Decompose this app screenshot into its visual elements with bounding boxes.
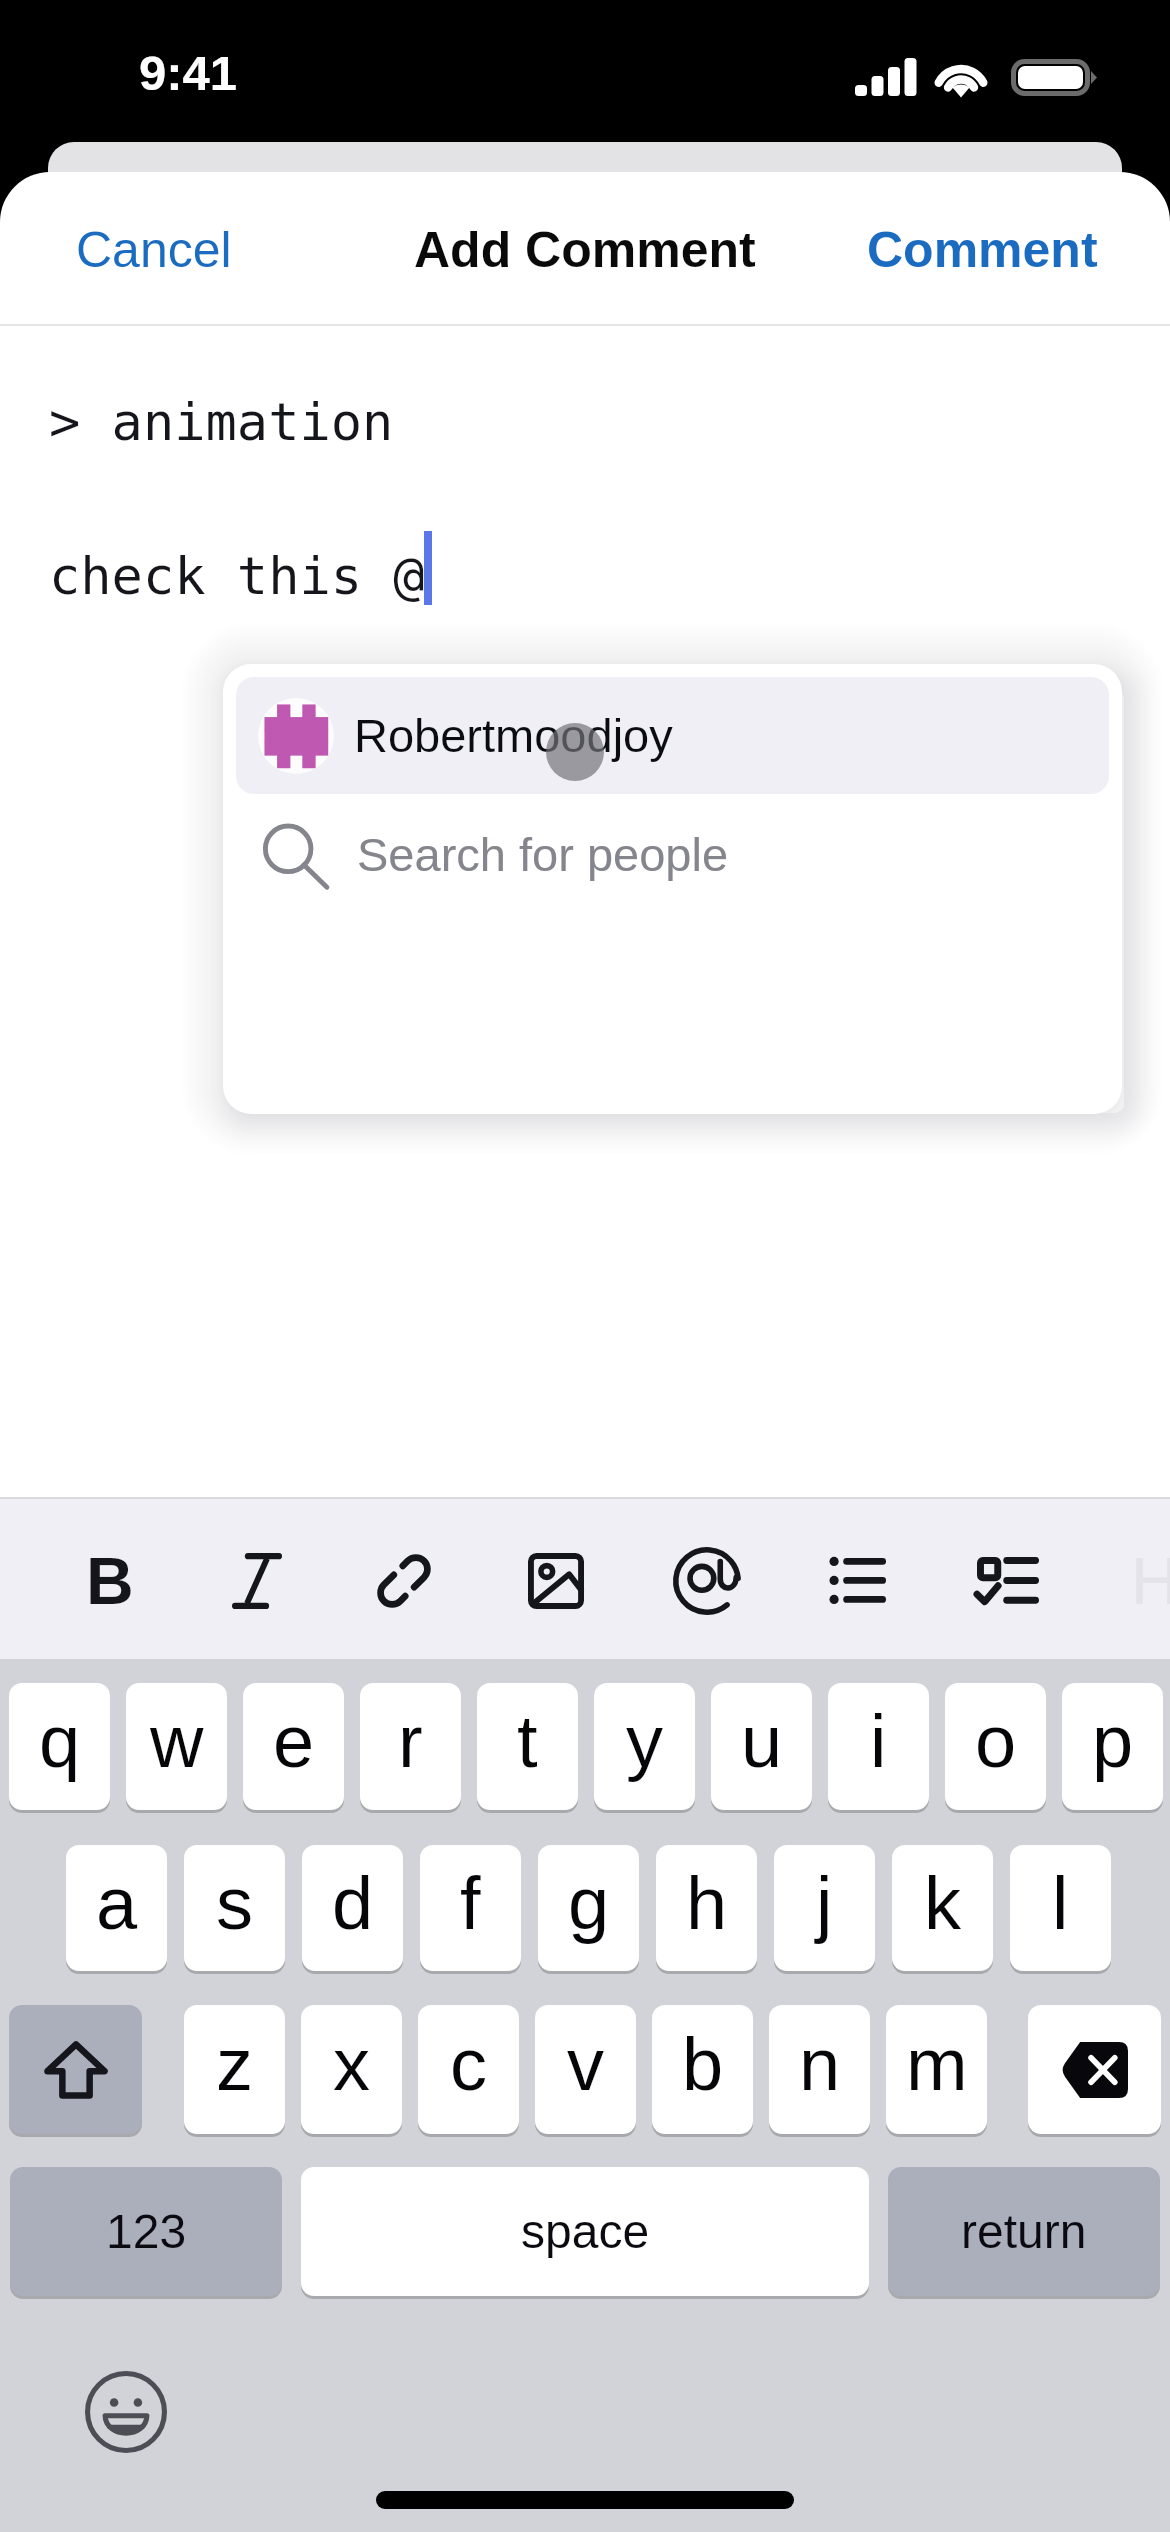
button[interactable]: v xyxy=(535,2005,636,2134)
button[interactable]: o xyxy=(945,1683,1046,1810)
button[interactable]: f xyxy=(420,1845,521,1971)
staticText: a xyxy=(96,1862,138,1945)
staticText: s xyxy=(216,1862,253,1945)
button[interactable]: Italic xyxy=(201,1525,313,1637)
staticText: f xyxy=(460,1862,481,1945)
staticText: return xyxy=(961,2205,1087,2259)
button[interactable]: Comment xyxy=(827,196,1138,304)
staticText: check this @ xyxy=(49,546,425,607)
button[interactable]: j xyxy=(774,1845,875,1971)
button[interactable]: g xyxy=(538,1845,639,1971)
button[interactable]: e xyxy=(243,1683,344,1810)
button[interactable]: 123 xyxy=(10,2167,282,2296)
button[interactable]: Image xyxy=(500,1525,612,1637)
staticText: p xyxy=(1092,1700,1134,1783)
button[interactable]: t xyxy=(477,1683,578,1810)
staticText: Robertmoodjoy xyxy=(354,709,673,762)
button[interactable]: z xyxy=(184,2005,285,2134)
staticText: y xyxy=(626,1700,663,1783)
staticText: h xyxy=(686,1862,728,1945)
button[interactable]: s xyxy=(184,1845,285,1971)
staticText: j xyxy=(816,1862,833,1945)
staticText: Add Comment xyxy=(414,222,756,278)
staticText: q xyxy=(39,1700,81,1783)
button[interactable]: a xyxy=(66,1845,167,1971)
staticText: o xyxy=(975,1700,1017,1783)
staticText: m xyxy=(906,2023,968,2106)
button[interactable]: Shift xyxy=(9,2005,142,2134)
staticText: i xyxy=(870,1700,887,1783)
button[interactable]: Bullet list xyxy=(801,1525,913,1637)
button[interactable]: r xyxy=(360,1683,461,1810)
staticText: b xyxy=(682,2023,724,2106)
staticText: Search for people xyxy=(357,828,729,881)
staticText: d xyxy=(332,1862,374,1945)
button[interactable]: x xyxy=(301,2005,402,2134)
staticText: Cancel xyxy=(76,222,232,278)
staticText: H xyxy=(1131,1544,1170,1618)
button[interactable]: n xyxy=(769,2005,870,2134)
staticText: 123 xyxy=(106,2205,187,2259)
staticText: n xyxy=(799,2023,841,2106)
staticText: w xyxy=(150,1700,204,1783)
button[interactable]: q xyxy=(9,1683,110,1810)
button[interactable]: Robertmoodjoy xyxy=(236,677,1109,794)
button[interactable]: d xyxy=(302,1845,403,1971)
button[interactable]: Checklist xyxy=(952,1525,1064,1637)
button[interactable]: Search for people xyxy=(236,794,1109,914)
button[interactable]: h xyxy=(656,1845,757,1971)
staticText: g xyxy=(568,1862,610,1945)
button[interactable]: Backspace xyxy=(1028,2005,1161,2134)
staticText: z xyxy=(216,2023,253,2106)
staticText: k xyxy=(924,1862,961,1945)
button[interactable]: Mention xyxy=(651,1525,763,1637)
button[interactable]: w xyxy=(126,1683,227,1810)
button[interactable]: m xyxy=(886,2005,987,2134)
button[interactable]: space xyxy=(301,2167,869,2296)
staticText: x xyxy=(333,2023,370,2106)
staticText: > animation xyxy=(49,392,394,453)
staticText: t xyxy=(517,1700,538,1783)
button[interactable]: i xyxy=(828,1683,929,1810)
button[interactable]: Cancel xyxy=(36,196,272,304)
staticText: r xyxy=(398,1700,423,1783)
button[interactable]: p xyxy=(1062,1683,1163,1810)
button[interactable]: return xyxy=(888,2167,1160,2296)
button[interactable]: b xyxy=(652,2005,753,2134)
button[interactable]: Link xyxy=(348,1525,460,1637)
staticText: Comment xyxy=(867,222,1098,278)
button[interactable]: y xyxy=(594,1683,695,1810)
staticText: u xyxy=(741,1700,783,1783)
button[interactable]: l xyxy=(1010,1845,1111,1971)
button[interactable]: Bold xyxy=(54,1525,166,1637)
staticText: l xyxy=(1052,1862,1069,1945)
staticText: e xyxy=(273,1700,315,1783)
staticText: v xyxy=(567,2023,604,2106)
button[interactable]: k xyxy=(892,1845,993,1971)
staticText: c xyxy=(450,2023,487,2106)
button[interactable]: Heading xyxy=(1099,1525,1170,1637)
button[interactable]: Emoji keyboard xyxy=(85,2371,167,2453)
staticText: space xyxy=(521,2205,650,2259)
staticText: 9:41 xyxy=(139,46,238,101)
button[interactable]: u xyxy=(711,1683,812,1810)
staticText: B xyxy=(86,1544,134,1618)
button[interactable]: c xyxy=(418,2005,519,2134)
